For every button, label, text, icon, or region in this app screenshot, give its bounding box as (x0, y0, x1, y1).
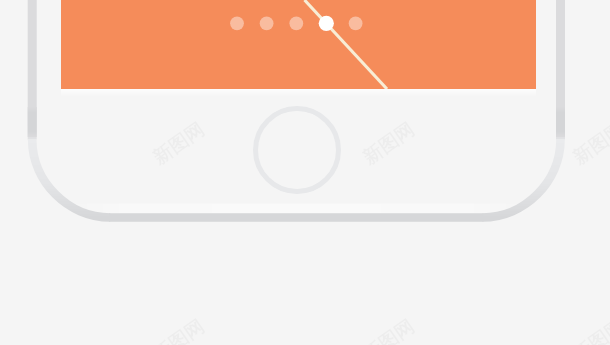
button[interactable]: Go to page ${i + 1} (258, 14, 276, 32)
button[interactable]: Go to page ${i + 1} (228, 14, 246, 32)
button[interactable]: Home (255, 108, 339, 192)
button[interactable]: Go to page ${i + 1} (347, 14, 365, 32)
button[interactable]: Go to page ${i + 1} (287, 14, 305, 32)
button[interactable]: Go to page ${i + 1} (317, 14, 335, 32)
